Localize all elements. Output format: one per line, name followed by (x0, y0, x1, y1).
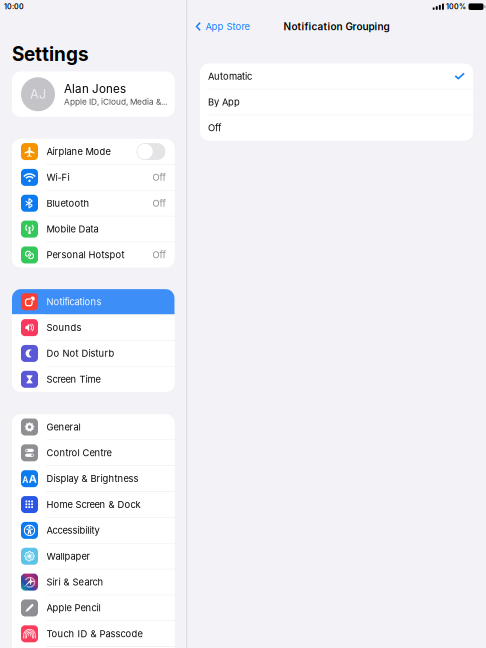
button[interactable]: Apple Pencil (12, 595, 174, 621)
button[interactable]: Airplane Mode (12, 139, 174, 164)
button[interactable]: Sounds (12, 315, 174, 340)
staticText: Siri & Search (46, 576, 103, 588)
button[interactable]: Wallpaper (12, 544, 174, 569)
staticText: 100% (446, 2, 466, 11)
staticText: Automatic (208, 71, 252, 82)
button[interactable]: Personal Hotspot (12, 242, 174, 268)
staticText: Sounds (46, 322, 81, 333)
staticText: Alan Jones (64, 82, 126, 96)
staticText: Apple Pencil (46, 602, 100, 614)
staticText: Off (152, 198, 165, 209)
button[interactable]: AJ (12, 72, 174, 117)
button[interactable]: App Store (187, 16, 250, 37)
staticText: By App (208, 96, 240, 108)
button[interactable]: Mobile Data (12, 216, 174, 242)
staticText: Airplane Mode (46, 146, 110, 157)
button[interactable]: Notifications (12, 289, 174, 314)
button[interactable]: A (12, 466, 174, 491)
staticText: A (22, 475, 28, 485)
staticText: Control Centre (46, 447, 111, 458)
staticText: Off (152, 249, 165, 261)
button[interactable]: Do Not Disturb (12, 341, 174, 366)
staticText: Personal Hotspot (46, 249, 124, 261)
staticText: Notifications (46, 296, 101, 307)
staticText: General (46, 421, 80, 433)
staticText: Screen Time (46, 374, 100, 385)
button[interactable]: Control Centre (12, 440, 174, 465)
button[interactable]: Siri & Search (12, 569, 174, 595)
staticText: Settings (12, 43, 89, 66)
button[interactable]: Accessibility (12, 518, 174, 543)
staticText: Accessibility (46, 525, 99, 536)
staticText: App Store (206, 21, 250, 32)
staticText: A (29, 472, 37, 485)
button[interactable]: By App (200, 89, 473, 115)
staticText: Off (208, 122, 221, 134)
staticText: Notification Grouping (284, 20, 390, 33)
staticText: Mobile Data (46, 223, 98, 235)
staticText: Bluetooth (46, 198, 89, 209)
button[interactable]: General (12, 414, 174, 440)
button[interactable]: Screen Time (12, 367, 174, 392)
button[interactable]: Automatic (200, 64, 473, 89)
staticText: Wi-Fi (46, 172, 69, 183)
staticText: 10:00 (4, 2, 24, 11)
staticText: Touch ID & Passcode (46, 628, 142, 639)
button[interactable]: Home Screen & Dock (12, 492, 174, 517)
staticText: Home Screen & Dock (46, 499, 140, 510)
staticText: Do Not Disturb (46, 348, 114, 359)
staticText: Apple ID, iCloud, Media &... (64, 97, 167, 107)
button[interactable]: Off (200, 115, 473, 141)
button[interactable]: Wi-Fi (12, 165, 174, 190)
button[interactable]: Bluetooth (12, 191, 174, 216)
button[interactable]: Touch ID & Passcode (12, 621, 174, 646)
staticText: Off (152, 172, 165, 183)
staticText: Display & Brightness (46, 473, 138, 484)
staticText: Wallpaper (46, 551, 90, 562)
staticText: AJ (30, 87, 46, 102)
